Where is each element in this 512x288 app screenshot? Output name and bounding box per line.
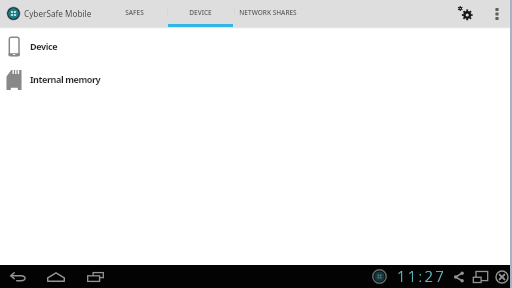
button[interactable]: CyberSafe Mobile xyxy=(6,6,21,21)
button[interactable]: More options xyxy=(487,3,506,24)
button[interactable]: Back xyxy=(8,270,28,283)
button[interactable]: Close xyxy=(494,269,509,284)
button[interactable]: NETWORK SHARES xyxy=(235,0,300,27)
button[interactable]: Recent apps xyxy=(85,270,105,283)
button[interactable]: Share xyxy=(451,269,466,284)
button[interactable]: Device xyxy=(0,27,512,65)
staticText: CyberSafe Mobile xyxy=(24,8,92,19)
staticText: SAFES xyxy=(125,8,144,17)
staticText: Internal memory xyxy=(30,73,101,85)
button[interactable]: Internal memory xyxy=(0,65,512,93)
button[interactable]: DEVICE xyxy=(168,0,233,27)
button[interactable]: SAFES xyxy=(102,0,167,27)
staticText: 11:27 xyxy=(397,266,446,286)
button[interactable]: Home xyxy=(45,270,67,283)
staticText: NETWORK SHARES xyxy=(239,8,297,17)
staticText: Device xyxy=(30,40,58,52)
staticText: DEVICE xyxy=(189,8,212,17)
button[interactable]: Settings xyxy=(454,3,475,24)
button[interactable]: Cast screen xyxy=(472,269,489,284)
